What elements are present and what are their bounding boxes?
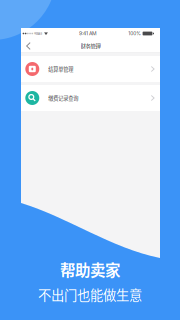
staticText: 缴费记录查询 [48, 94, 78, 102]
staticText: 帮助卖家 [60, 258, 120, 281]
button[interactable]: 结算单管理 [21, 56, 160, 82]
staticText: 中国移动 [34, 32, 42, 35]
staticText: 结算单管理 [48, 65, 73, 73]
staticText: 100% [128, 31, 141, 36]
staticText: 财务管理 [80, 42, 100, 50]
staticText: 9:41 AM [79, 30, 97, 36]
staticText: 不出门也能做生意 [38, 285, 142, 304]
button[interactable]: 缴费记录查询 [21, 85, 160, 111]
button[interactable]: Back [21, 39, 36, 53]
